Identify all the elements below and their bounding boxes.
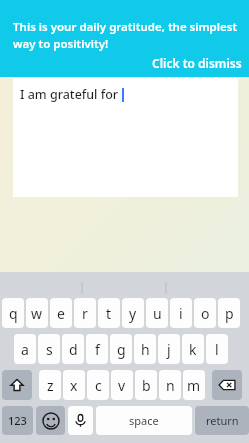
- button[interactable]: t: [98, 298, 120, 328]
- staticText: Click to dismiss: [152, 55, 242, 71]
- staticText: n: [166, 376, 175, 395]
- button[interactable]: b: [135, 370, 157, 400]
- button[interactable]: Backspace: [212, 370, 242, 400]
- button[interactable]: k: [182, 334, 204, 364]
- button[interactable]: Emoji: [36, 406, 65, 435]
- staticText: k: [189, 340, 197, 359]
- staticText: m: [187, 376, 201, 395]
- button[interactable]: u: [146, 298, 168, 328]
- button[interactable]: d: [62, 334, 84, 364]
- button[interactable]: This is your daily gratitude, the simple…: [0, 0, 249, 77]
- staticText: y: [129, 304, 137, 323]
- staticText: l: [215, 340, 219, 359]
- staticText: a: [21, 340, 29, 359]
- button[interactable]: g: [110, 334, 132, 364]
- staticText: I am grateful for: [20, 86, 119, 103]
- button[interactable]: x: [63, 370, 85, 400]
- staticText: o: [201, 304, 210, 323]
- staticText: i: [179, 304, 183, 323]
- staticText: x: [70, 376, 78, 395]
- button[interactable]: r: [74, 298, 96, 328]
- staticText: r: [82, 304, 88, 323]
- button[interactable]: l: [206, 334, 228, 364]
- staticText: space: [129, 413, 159, 428]
- button[interactable]: c: [87, 370, 109, 400]
- staticText: return: [206, 413, 239, 428]
- staticText: v: [118, 376, 126, 395]
- button[interactable]: f: [86, 334, 108, 364]
- button[interactable]: i: [170, 298, 192, 328]
- staticText: h: [141, 340, 150, 359]
- button[interactable]: n: [159, 370, 181, 400]
- button[interactable]: j: [158, 334, 180, 364]
- staticText: z: [47, 376, 54, 395]
- staticText: t: [106, 304, 112, 323]
- button[interactable]: a: [14, 334, 36, 364]
- button[interactable]: space: [96, 406, 192, 435]
- button[interactable]: return: [195, 406, 249, 435]
- staticText: d: [69, 340, 78, 359]
- button[interactable]: I am grateful for: [13, 78, 238, 197]
- button[interactable]: p: [218, 298, 240, 328]
- staticText: p: [225, 304, 234, 323]
- button[interactable]: s: [38, 334, 60, 364]
- staticText: 123: [8, 413, 27, 428]
- staticText: b: [142, 376, 151, 395]
- staticText: w: [31, 304, 43, 323]
- staticText: u: [153, 304, 162, 323]
- button[interactable]: y: [122, 298, 144, 328]
- staticText: c: [95, 376, 102, 395]
- button[interactable]: m: [183, 370, 205, 400]
- staticText: j: [167, 340, 171, 359]
- staticText: g: [117, 340, 126, 359]
- staticText: This is your daily gratitude, the simple…: [13, 19, 241, 51]
- button[interactable]: h: [134, 334, 156, 364]
- button[interactable]: e: [50, 298, 72, 328]
- staticText: f: [95, 340, 100, 359]
- staticText: s: [46, 340, 53, 359]
- button[interactable]: o: [194, 298, 216, 328]
- button[interactable]: Voice input: [68, 406, 93, 435]
- button[interactable]: q: [2, 298, 24, 328]
- button[interactable]: z: [39, 370, 61, 400]
- button[interactable]: 123: [2, 406, 33, 435]
- staticText: q: [9, 304, 18, 323]
- button[interactable]: v: [111, 370, 133, 400]
- staticText: e: [57, 304, 65, 323]
- button[interactable]: Shift: [2, 370, 32, 400]
- button[interactable]: w: [26, 298, 48, 328]
